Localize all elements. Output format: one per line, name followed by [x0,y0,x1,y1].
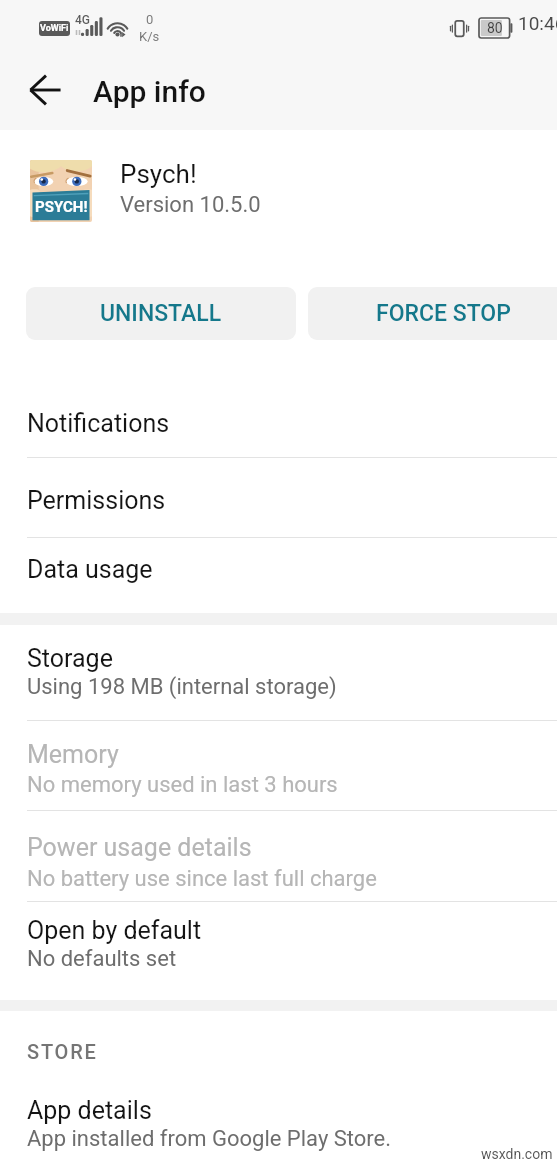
staticText: Notifications [27,409,170,438]
button[interactable] [0,902,557,1000]
staticText: 0 [146,12,154,27]
button[interactable] [0,721,557,811]
staticText: UNINSTALL [100,300,222,327]
staticText: 4G [75,13,90,27]
staticText: Psych! [120,159,197,189]
staticText: Memory [27,740,119,769]
staticText: Data usage [27,555,153,584]
staticText: App details [27,1096,152,1125]
button[interactable] [0,811,557,902]
button[interactable] [0,1080,557,1166]
staticText: STORE [27,1040,98,1063]
staticText: PSYCH! [35,198,88,216]
staticText: App info [93,74,206,109]
staticText: No defaults set [27,946,177,972]
staticText: Using 198 MB (internal storage) [27,674,337,700]
staticText: Storage [27,644,113,673]
staticText: App installed from Google Play Store. [27,1126,392,1152]
button[interactable] [0,625,557,721]
staticText: Version 10.5.0 [120,192,261,218]
staticText: 80 [487,20,503,36]
staticText: VoWiFi [40,23,69,34]
staticText: 10:46 [518,12,557,34]
button[interactable]: FORCE STOP [308,287,557,340]
button[interactable]: Back [14,59,76,121]
staticText: No battery use since last full charge [27,866,377,892]
button[interactable] [0,537,557,613]
staticText: wsxdn.com [481,1146,553,1162]
button[interactable] [0,461,557,537]
staticText: Open by default [27,916,202,945]
button[interactable]: UNINSTALL [26,287,296,340]
staticText: Power usage details [27,833,252,862]
staticText: Permissions [27,486,166,515]
button[interactable] [0,384,557,461]
staticText: K/s [139,29,160,44]
staticText: No memory used in last 3 hours [27,772,338,798]
staticText: FORCE STOP [376,300,511,327]
